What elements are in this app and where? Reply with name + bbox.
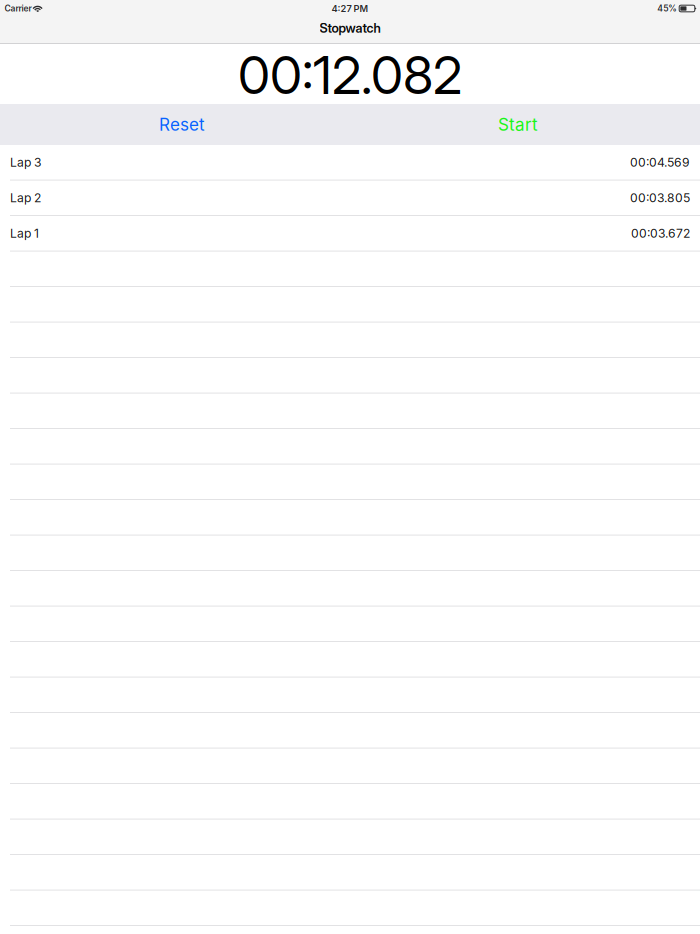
staticText: 45% [657, 3, 677, 14]
staticText: Carrier [4, 3, 31, 14]
staticText: Reset [159, 114, 205, 135]
staticText: Lap 1 [10, 226, 39, 241]
staticText: 00:03.672 [631, 226, 690, 241]
staticText: 00:03.805 [630, 190, 690, 205]
button[interactable]: Reset [14, 104, 350, 145]
button[interactable]: Lap 1 [0, 216, 700, 251]
button[interactable]: Lap 2 [0, 180, 700, 216]
staticText: 4:27 PM [331, 3, 368, 14]
staticText: 00:04.569 [630, 155, 690, 170]
staticText: Start [498, 114, 538, 135]
button[interactable]: Start [350, 104, 686, 145]
staticText: Stopwatch [319, 20, 380, 36]
button[interactable]: Lap 3 [0, 145, 700, 180]
staticText: 00:12.082 [238, 43, 462, 106]
staticText: Lap 3 [10, 155, 41, 170]
staticText: Lap 2 [10, 190, 41, 205]
